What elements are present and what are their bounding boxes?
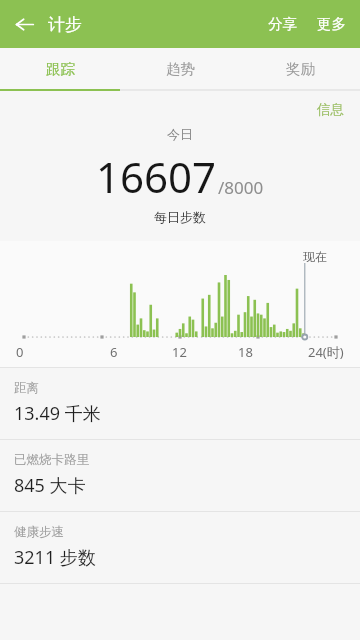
button[interactable]: 距离	[0, 367, 360, 439]
staticText: 0	[16, 343, 24, 361]
staticText: 845 大卡	[14, 473, 86, 498]
button[interactable]: 信息	[301, 99, 360, 120]
button[interactable]: 健康步速	[0, 511, 360, 583]
button[interactable]: Back	[0, 0, 48, 48]
staticText: 已燃烧卡路里	[14, 452, 89, 468]
button[interactable]: 跟踪	[0, 48, 120, 89]
staticText: 分享	[268, 15, 297, 33]
staticText: 18	[238, 343, 253, 361]
staticText: 距离	[14, 380, 39, 396]
staticText: 24(时)	[308, 343, 344, 361]
staticText: 每日步数	[154, 209, 206, 225]
button[interactable]: 更多	[307, 1, 360, 47]
staticText: 现在	[303, 249, 327, 264]
staticText: 趋势	[166, 60, 195, 78]
staticText: 3211 步数	[14, 545, 96, 570]
staticText: 13.49 千米	[14, 401, 101, 426]
staticText: /8000	[218, 176, 264, 199]
button[interactable]: 分享	[258, 1, 307, 47]
staticText: 计步	[48, 14, 82, 35]
staticText: 健康步速	[14, 524, 64, 540]
staticText: 今日	[167, 126, 193, 142]
staticText: 16607	[96, 148, 217, 205]
button[interactable]: 趋势	[120, 48, 240, 89]
button[interactable]: 已燃烧卡路里	[0, 439, 360, 511]
staticText: 12	[172, 343, 187, 361]
staticText: 6	[110, 343, 118, 361]
staticText: 奖励	[286, 60, 315, 78]
button[interactable]: 奖励	[240, 48, 360, 89]
staticText: 信息	[317, 101, 344, 118]
staticText: 更多	[317, 15, 346, 33]
staticText: 跟踪	[46, 60, 75, 78]
